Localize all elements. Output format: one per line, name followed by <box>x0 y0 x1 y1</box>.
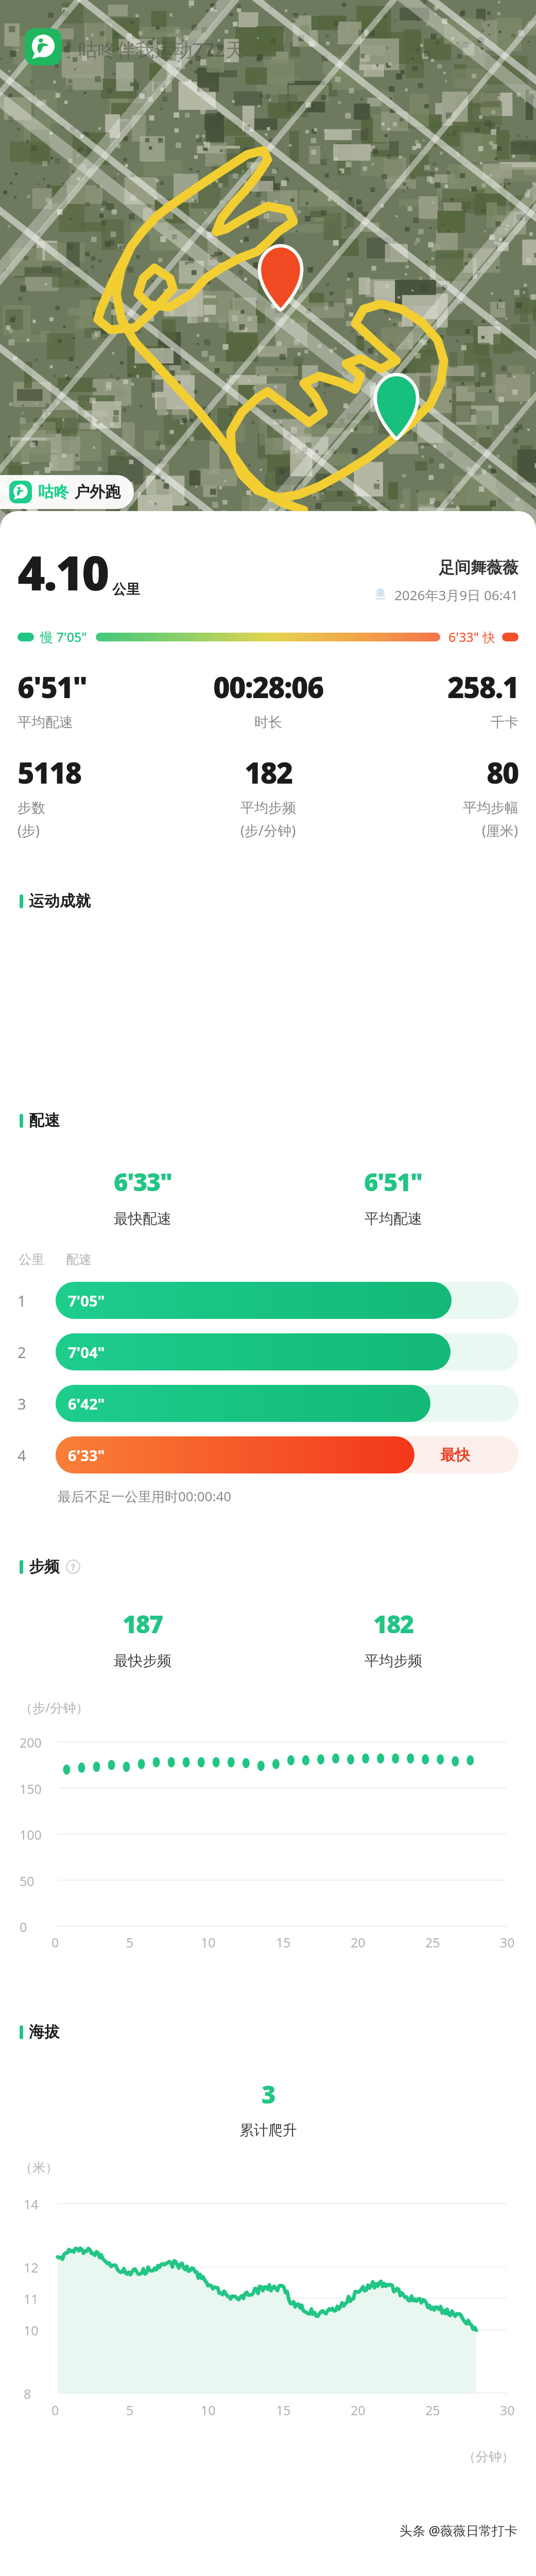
button[interactable]: 2 <box>0 1333 536 1370</box>
staticText: 0 <box>51 2401 59 2419</box>
staticText: （分钟） <box>463 2449 514 2465</box>
staticText: 咕咚伴我运动772天 <box>78 36 245 62</box>
staticText: 15 <box>276 2401 291 2419</box>
staticText: 户外跑 <box>74 482 120 502</box>
staticText: 步数 <box>18 799 45 817</box>
staticText: 150 <box>20 1780 42 1798</box>
staticText: 6'33" <box>114 1165 172 1198</box>
staticText: 30 <box>500 1934 515 1951</box>
staticText: 平均步频 <box>240 799 296 817</box>
staticText: 累计爬升 <box>239 2121 297 2139</box>
staticText: 10 <box>201 2401 216 2419</box>
staticText: 配速 <box>29 1111 60 1130</box>
staticText: 14 <box>24 2195 39 2213</box>
staticText: 0 <box>20 1918 27 1936</box>
staticText: （步/分钟） <box>20 1699 89 1716</box>
staticText: 平均步幅 <box>463 799 518 817</box>
staticText: 6'42" <box>68 1394 105 1414</box>
staticText: 100 <box>20 1826 42 1843</box>
staticText: 12 <box>24 2259 39 2276</box>
staticText: 10 <box>201 1934 216 1951</box>
staticText: (厘米) <box>482 821 518 840</box>
staticText: 00:28:06 <box>213 667 323 706</box>
button[interactable]: 海拔 <box>0 2020 536 2044</box>
staticText: 20 <box>351 2401 366 2419</box>
staticText: 1 <box>18 1291 26 1311</box>
staticText: 187 <box>123 1607 163 1640</box>
staticText: 4.10 <box>18 540 108 604</box>
staticText: 最快 <box>440 1446 470 1465</box>
staticText: （米） <box>20 2160 58 2176</box>
staticText: 平均配速 <box>365 1210 422 1228</box>
staticText: 10 <box>24 2321 39 2339</box>
button[interactable]: 咕咚 <box>0 475 134 509</box>
staticText: 最快步频 <box>114 1652 171 1670</box>
staticText: 公里 <box>19 1251 44 1267</box>
staticText: 5 <box>126 2401 134 2419</box>
staticText: 3 <box>262 2078 275 2111</box>
staticText: (步) <box>18 821 40 840</box>
staticText: 50 <box>20 1872 34 1890</box>
staticText: 200 <box>20 1734 42 1751</box>
button[interactable]: 4 <box>0 1436 536 1473</box>
staticText: 258.1 <box>447 667 518 706</box>
staticText: 慢 7'05" <box>40 628 88 646</box>
staticText: 7'05" <box>68 1291 105 1311</box>
staticText: ? <box>71 1561 75 1573</box>
staticText: 4 <box>18 1445 26 1465</box>
staticText: 25 <box>425 1934 440 1951</box>
staticText: 千卡 <box>491 714 518 731</box>
staticText: 6'51" <box>18 667 87 706</box>
staticText: 时长 <box>254 714 282 731</box>
staticText: 8 <box>24 2385 31 2402</box>
staticText: 30 <box>500 2401 515 2419</box>
staticText: 平均步频 <box>365 1652 422 1670</box>
staticText: 5118 <box>18 753 81 792</box>
staticText: 足间舞薇薇 <box>439 557 518 578</box>
button[interactable]: 3 <box>0 1385 536 1422</box>
staticText: 公里 <box>112 581 140 598</box>
staticText: 平均配速 <box>18 714 73 731</box>
staticText: 最后不足一公里用时00:00:40 <box>58 1487 232 1505</box>
staticText: 配速 <box>66 1251 92 1267</box>
staticText: 5 <box>126 1934 134 1951</box>
staticText: 运动成就 <box>29 891 91 911</box>
staticText: 6'33" <box>68 1445 105 1465</box>
staticText: 182 <box>245 753 292 792</box>
staticText: 11 <box>24 2290 39 2308</box>
staticText: 咕咚 <box>38 482 69 502</box>
staticText: 3 <box>18 1394 26 1414</box>
staticText: 最快配速 <box>114 1210 171 1228</box>
staticText: 2 <box>18 1342 26 1362</box>
button[interactable]: 运动成就 <box>0 889 536 913</box>
button[interactable]: 1 <box>0 1282 536 1319</box>
staticText: 6'51" <box>364 1165 422 1198</box>
staticText: 头条 @薇薇日常打卡 <box>400 2521 517 2539</box>
staticText: 15 <box>276 1934 291 1951</box>
staticText: 80 <box>487 753 518 792</box>
staticText: 步频 <box>29 1557 60 1577</box>
staticText: 0 <box>51 1934 59 1951</box>
staticText: 7'04" <box>68 1342 105 1362</box>
staticText: (步/分钟) <box>240 821 296 840</box>
staticText: 6'33" 快 <box>448 628 496 646</box>
button[interactable]: 帮助 <box>66 1560 80 1574</box>
staticText: 2026年3月9日 06:41 <box>394 586 518 604</box>
staticText: 海拔 <box>29 2022 60 2042</box>
staticText: 182 <box>373 1607 413 1640</box>
button[interactable]: 咕咚 <box>25 28 62 65</box>
staticText: 25 <box>425 2401 440 2419</box>
button[interactable]: 步频 <box>0 1555 536 1579</box>
staticText: 20 <box>351 1934 366 1951</box>
button[interactable]: 配速 <box>0 1109 536 1132</box>
